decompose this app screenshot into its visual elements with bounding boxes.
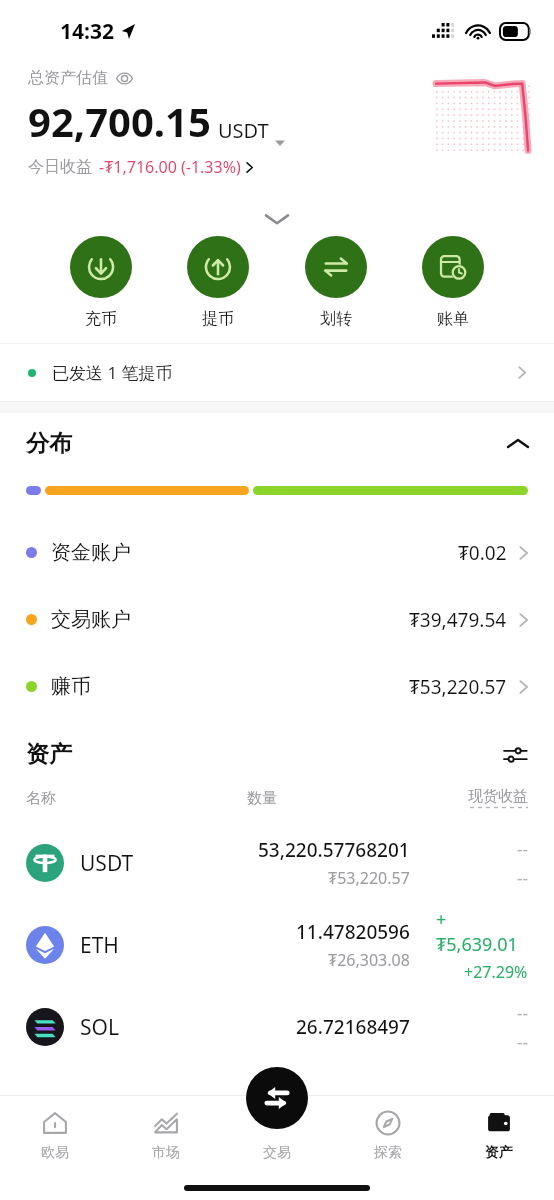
staticText: 53,220.57768201 [258, 837, 410, 863]
button[interactable]: 资金账户 [0, 519, 554, 586]
staticText: 交易 [263, 1144, 291, 1162]
staticText: -- [517, 866, 528, 889]
staticText: ₮26,303.08 [328, 949, 410, 971]
button[interactable]: 市场 [110, 1095, 221, 1175]
button[interactable]: 今日收益 [28, 156, 253, 178]
staticText: 11.47820596 [296, 919, 410, 945]
button[interactable]: 充币 [64, 236, 138, 329]
staticText: -- [517, 1001, 528, 1024]
staticText: 探索 [374, 1144, 402, 1162]
button[interactable]: 提币 [181, 236, 255, 329]
button[interactable]: 欧易 [0, 1095, 110, 1175]
staticText: SOL [80, 1013, 119, 1042]
staticText: 划转 [320, 309, 352, 329]
button[interactable]: 划转 [299, 236, 373, 329]
staticText: 交易账户 [51, 607, 131, 632]
staticText: 已发送 1 笔提币 [52, 361, 173, 384]
button[interactable]: 赚币 [0, 653, 554, 720]
staticText: -- [517, 837, 528, 860]
staticText: 数量 [247, 789, 277, 808]
button[interactable]: Trade [246, 1067, 308, 1129]
staticText: 26.72168497 [296, 1014, 410, 1040]
staticText: 名称 [26, 789, 56, 808]
staticText: +₮5,639.01 [436, 907, 528, 957]
staticText: 总资产估值 [28, 68, 108, 88]
staticText: ₮53,220.57 [409, 674, 507, 700]
staticText: ₮0.02 [458, 540, 507, 566]
button[interactable]: ETH [0, 904, 554, 986]
button[interactable]: 已发送 1 笔提币 [0, 344, 554, 401]
button[interactable]: 账单 [416, 236, 490, 329]
other: Collapse [508, 438, 528, 449]
staticText: 市场 [152, 1144, 180, 1162]
staticText: 14:32 [60, 17, 114, 46]
staticText: 资产 [26, 740, 72, 769]
staticText: USDT [218, 117, 269, 144]
staticText: ₮39,479.54 [409, 607, 507, 633]
button[interactable]: 资产 [443, 1095, 554, 1175]
staticText: 现货收益 [468, 787, 528, 806]
staticText: 资产 [485, 1144, 513, 1162]
button[interactable]: 探索 [332, 1095, 443, 1175]
button[interactable]: Filter [502, 742, 528, 768]
button[interactable]: USDT [0, 822, 554, 904]
staticText: ₮53,220.57 [328, 867, 410, 889]
staticText: USDT [80, 849, 134, 878]
staticText: -₮1,716.00 (-1.33%) [99, 156, 241, 178]
staticText: 赚币 [51, 674, 91, 699]
button[interactable]: Expand [266, 213, 288, 225]
staticText: 账单 [437, 309, 469, 329]
staticText: 充币 [85, 309, 117, 329]
staticText: 今日收益 [28, 157, 92, 177]
staticText: 资金账户 [51, 540, 131, 565]
staticText: 分布 [26, 429, 72, 458]
button[interactable]: Toggle balance visibility [116, 70, 133, 87]
staticText: ETH [80, 931, 119, 960]
staticText: 欧易 [41, 1144, 69, 1162]
staticText: 提币 [202, 309, 234, 329]
staticText: 92,700.15 [28, 94, 211, 148]
button[interactable]: 分布 [26, 429, 528, 458]
button[interactable]: 交易账户 [0, 586, 554, 653]
staticText: +27.29% [464, 961, 528, 983]
button[interactable]: SOL [0, 986, 554, 1068]
staticText: -- [517, 1030, 528, 1053]
button[interactable]: 交易 [221, 1095, 332, 1175]
